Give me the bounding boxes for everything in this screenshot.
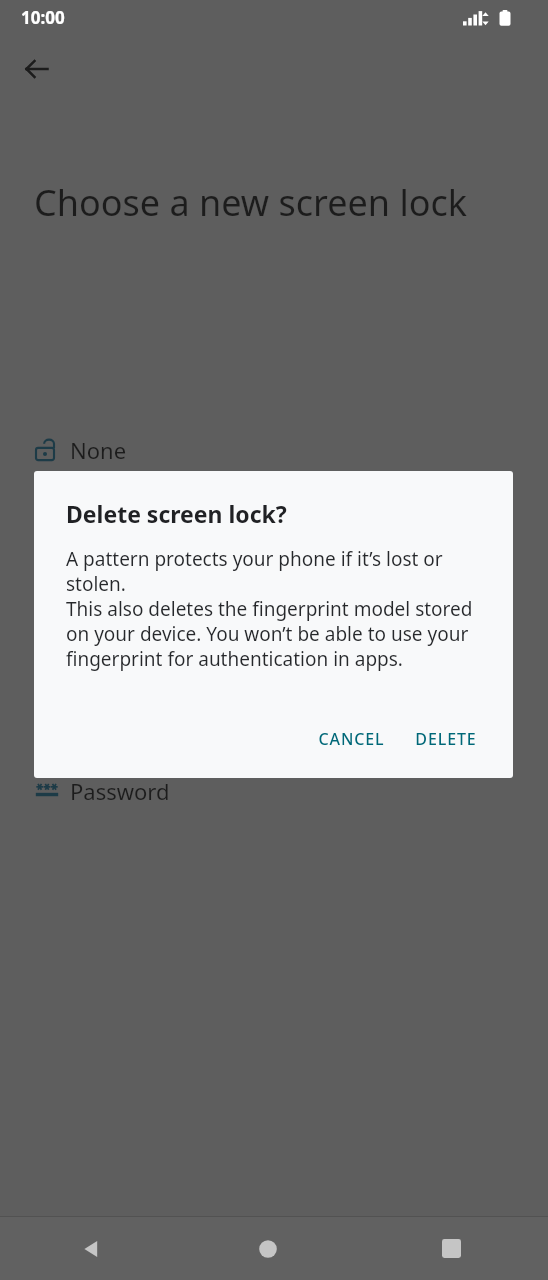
button[interactable]: Recent apps [354,1217,548,1280]
staticText: PIN [70,605,108,635]
button[interactable]: PIN [0,594,548,646]
staticText: Choose a new screen lock [34,178,504,227]
staticText: Password [70,776,170,806]
button[interactable]: CANCEL [306,719,397,759]
button[interactable]: Back [0,1217,182,1280]
staticText: DELETE [415,728,477,750]
button[interactable]: Home [182,1217,354,1280]
button[interactable]: Pattern [0,500,548,552]
button[interactable]: DELETE [403,719,489,759]
button[interactable]: Password [0,765,548,817]
staticText: 10:00 [21,6,65,29]
staticText: None [70,435,127,465]
staticText: A pattern protects your phone if it’s lo… [66,546,486,672]
staticText: CANCEL [318,728,385,750]
button[interactable]: Navigate up [13,45,61,93]
staticText: Pattern [70,511,147,541]
button[interactable]: None [0,424,548,476]
staticText: Delete screen lock? [66,498,287,529]
